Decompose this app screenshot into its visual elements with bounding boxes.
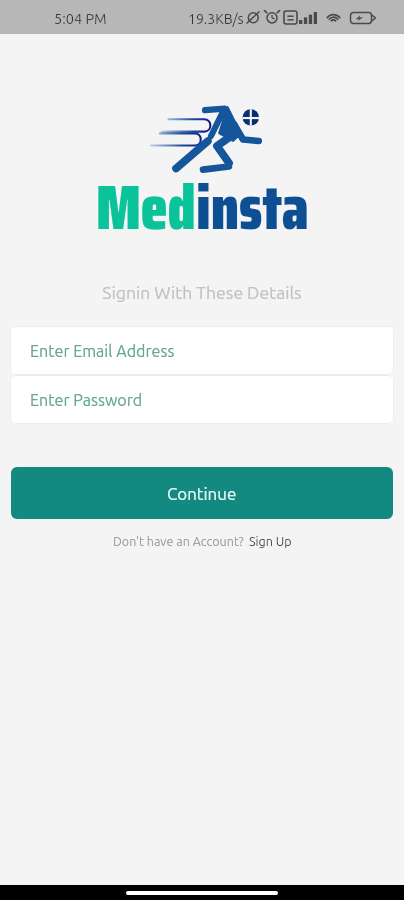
staticText: Signin With These Details	[0, 283, 404, 303]
button[interactable]: Sign Up	[249, 534, 292, 548]
staticText: Med	[96, 159, 196, 257]
staticText: Enter Password	[30, 391, 143, 409]
button[interactable]: Enter Email Address	[10, 326, 394, 375]
staticText: Enter Email Address	[30, 342, 175, 360]
button[interactable]: Enter Password	[10, 375, 394, 424]
staticText: Sign Up	[249, 534, 292, 548]
button[interactable]: Continue	[11, 467, 393, 519]
staticText: Continue	[167, 484, 237, 503]
staticText: 5:04 PM	[54, 10, 107, 26]
staticText: 19.3KB/s	[188, 11, 244, 27]
staticText: insta	[196, 159, 309, 257]
staticText: Don't have an Account?	[113, 534, 244, 548]
